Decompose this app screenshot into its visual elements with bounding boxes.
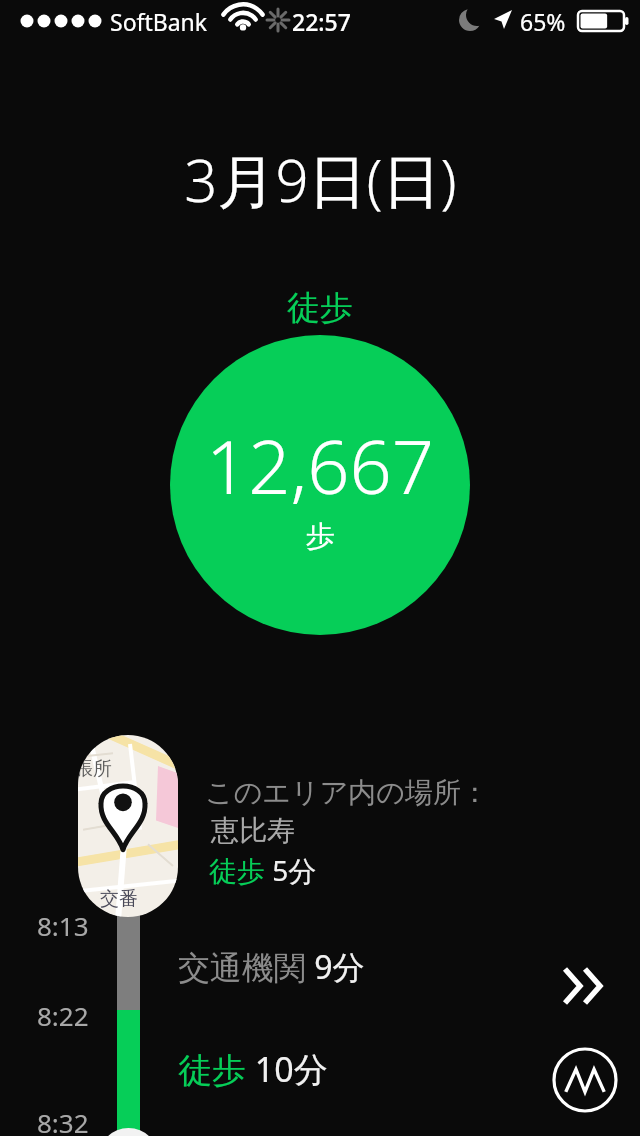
staticText: 65% [520, 6, 566, 37]
staticText: 張所 [78, 757, 112, 781]
button[interactable]: Next [553, 955, 615, 1017]
staticText: 徒歩 10分 [178, 1046, 328, 1092]
button[interactable]: App logo [552, 1047, 618, 1113]
staticText: 徒歩 [287, 287, 353, 329]
button[interactable]: 徒歩 10分 [178, 1046, 328, 1092]
staticText: 歩 [306, 518, 335, 555]
staticText: 3月9日(日) [184, 140, 457, 219]
staticText: 徒歩 5分 [209, 851, 317, 889]
button[interactable]: このエリア内の場所： [205, 775, 489, 889]
staticText: 22:57 [292, 6, 351, 37]
staticText: 8:22 [37, 998, 89, 1033]
staticText: 8:13 [37, 908, 89, 943]
button[interactable]: 12,667 [170, 335, 470, 635]
button[interactable]: 交通機関 9分 [178, 945, 365, 989]
button[interactable]: Map location Ebisu [78, 735, 178, 917]
staticText: 12,667 [206, 415, 434, 516]
staticText: 8:32 [37, 1105, 89, 1136]
staticText: このエリア内の場所： [205, 775, 489, 810]
staticText: 交番 [100, 887, 138, 911]
staticText: SoftBank [110, 6, 208, 37]
staticText: 交通機関 9分 [178, 945, 365, 989]
staticText: 恵比寿 [211, 813, 295, 848]
